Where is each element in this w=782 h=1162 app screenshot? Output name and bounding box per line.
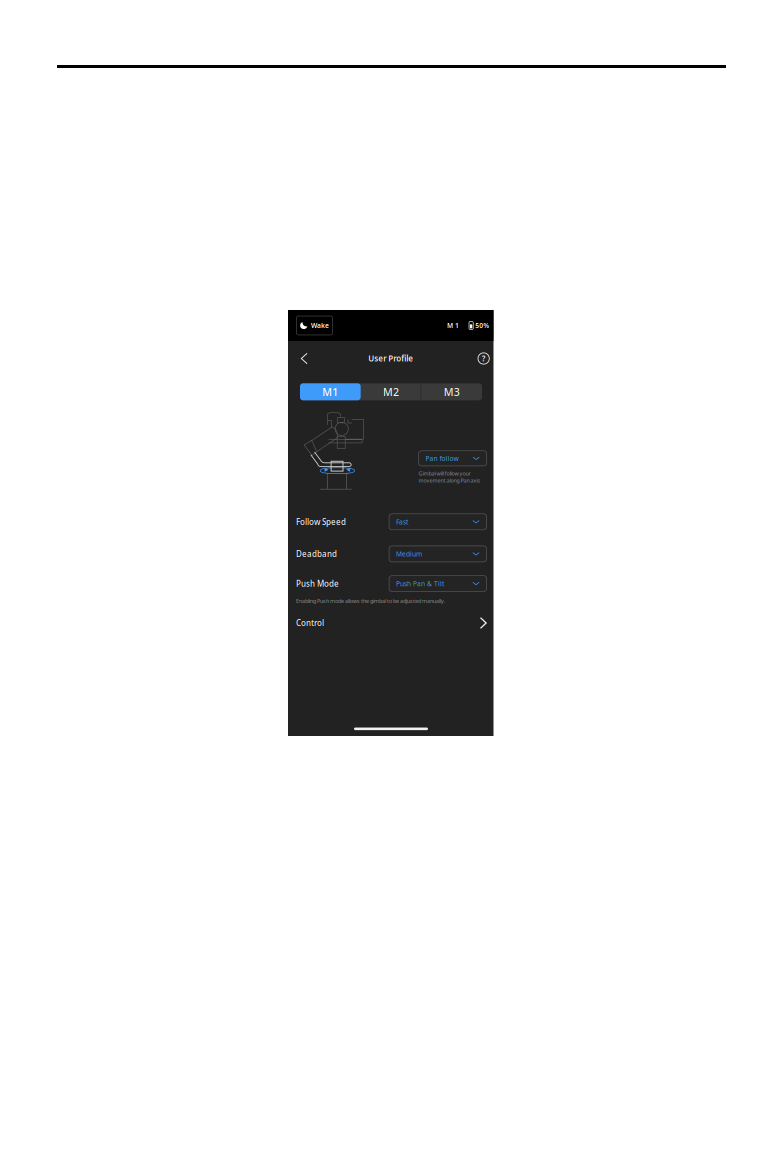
staticText: M 1 [447, 321, 459, 330]
staticText: User Profile [368, 353, 413, 364]
staticText: Control [296, 618, 324, 628]
staticText: 50% [475, 321, 489, 330]
button[interactable]: Wake [296, 316, 333, 335]
staticText: M3 [444, 385, 460, 399]
button[interactable]: Push Pan & Tilt [389, 576, 487, 592]
button[interactable]: Help [476, 350, 491, 367]
staticText: Fast [396, 517, 408, 526]
staticText: Gimbal will follow your movement along P… [418, 470, 480, 484]
staticText: ? [482, 353, 486, 364]
staticText: Medium [396, 549, 422, 558]
button[interactable]: M1 [300, 383, 361, 400]
button[interactable]: M2 [361, 383, 421, 400]
staticText: Push Pan & Tilt [396, 579, 444, 588]
staticText: Pan follow [425, 454, 458, 463]
button[interactable]: Back [297, 349, 311, 368]
button[interactable]: Pan follow [418, 451, 487, 466]
staticText: Wake [311, 321, 329, 330]
button[interactable]: Control [296, 614, 487, 632]
staticText: Follow Speed [296, 516, 346, 527]
staticText: Enabling Push mode allows the gimbal to … [296, 597, 445, 605]
button[interactable]: M3 [421, 383, 482, 400]
staticText: Deadband [296, 549, 337, 559]
button[interactable]: Fast [389, 514, 487, 530]
button[interactable]: Medium [389, 546, 487, 562]
staticText: Push Mode [296, 578, 339, 589]
staticText: M1 [322, 385, 338, 399]
staticText: M2 [383, 385, 399, 399]
